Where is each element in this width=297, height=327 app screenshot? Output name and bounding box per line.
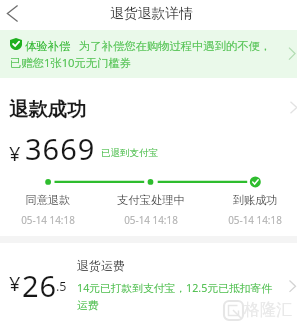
staticText: 体验补偿 <box>25 39 71 53</box>
staticText: 支付宝处理中 <box>117 193 185 207</box>
staticText: ¥ <box>9 140 21 167</box>
staticText: 05-14 14:18 <box>21 213 75 226</box>
staticText: 3669 <box>25 129 96 168</box>
button[interactable]: 体验补偿 <box>0 30 297 78</box>
staticText: .5 <box>56 278 67 295</box>
staticText: 退款成功 <box>9 97 87 121</box>
staticText: 格隆汇 <box>244 300 292 320</box>
staticText: 26 <box>22 266 58 305</box>
staticText: 已退到支付宝 <box>101 147 158 159</box>
staticText: 退货运费 <box>77 258 125 273</box>
button[interactable]: Back <box>1 1 25 25</box>
staticText: 同意退款 <box>25 193 71 207</box>
staticText: 为了补偿您在购物过程中遇到的不便， <box>79 39 272 53</box>
staticText: ¥ <box>9 270 21 297</box>
staticText: 05-14 14:18 <box>124 213 178 226</box>
staticText: 14元已打款到支付宝，12.5元已抵扣寄件运费 <box>77 281 279 312</box>
staticText: 到账成功 <box>232 193 278 207</box>
staticText: 退货退款详情 <box>110 5 193 22</box>
staticText: 05-14 14:18 <box>228 213 282 226</box>
button[interactable]: ¥ <box>0 250 297 320</box>
staticText: 已赠您1张10元无门槛券 <box>10 55 132 70</box>
button[interactable]: 退款成功 <box>0 88 297 126</box>
